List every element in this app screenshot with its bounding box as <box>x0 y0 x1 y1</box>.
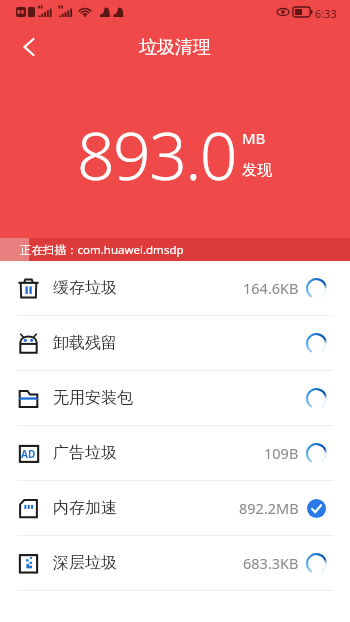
staticText: AD <box>21 447 36 461</box>
button[interactable]: 卸载残留 <box>0 316 350 370</box>
staticText: MB <box>242 128 266 148</box>
staticText: 无用安装包 <box>53 388 133 408</box>
staticText: 发现 <box>242 161 272 180</box>
button[interactable]: 缓存垃圾 <box>0 261 350 315</box>
button[interactable]: AD <box>0 426 350 480</box>
staticText: 深层垃圾 <box>53 553 117 573</box>
staticText: 6:33 <box>315 6 337 21</box>
staticText: 164.6KB <box>243 278 299 298</box>
button[interactable]: 深层垃圾 <box>0 536 350 590</box>
staticText: 892.2MB <box>239 498 299 518</box>
staticText: 垃圾清理 <box>139 36 211 59</box>
staticText: 683.3KB <box>243 553 299 573</box>
staticText: 内存加速 <box>53 498 117 518</box>
staticText: 正在扫描：com.huawei.dmsdp <box>20 242 184 258</box>
staticText: 109B <box>264 443 299 463</box>
button[interactable]: Back <box>11 29 47 65</box>
button[interactable]: 内存加速 <box>0 481 350 535</box>
staticText: 缓存垃圾 <box>53 278 117 298</box>
button[interactable]: 无用安装包 <box>0 371 350 425</box>
staticText: 893.0 <box>77 109 236 199</box>
staticText: 卸载残留 <box>53 333 117 353</box>
staticText: 广告垃圾 <box>53 443 117 463</box>
